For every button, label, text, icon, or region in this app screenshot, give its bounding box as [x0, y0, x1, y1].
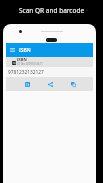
- button[interactable]: Open navigation menu: [6, 43, 19, 57]
- button[interactable]: Copy: [68, 79, 78, 89]
- staticText: 9781232132127: [8, 69, 44, 76]
- staticText: ISBN: [17, 57, 27, 62]
- staticText: 31 Dec 2018 07:34:11: [17, 62, 43, 66]
- button[interactable]: Show barcode: [22, 79, 32, 89]
- button[interactable]: Share: [45, 79, 55, 89]
- staticText: ISBN: [19, 47, 31, 54]
- staticText: Scan QR and barcode: [0, 6, 103, 15]
